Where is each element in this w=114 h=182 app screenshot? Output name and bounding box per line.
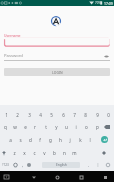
button[interactable]: 4 (35, 109, 45, 120)
button[interactable]: i (71, 121, 81, 132)
button[interactable]: w (10, 121, 20, 132)
button[interactable]: 1 (1, 109, 11, 120)
button[interactable]: , (18, 159, 27, 170)
button[interactable]: 0 (103, 109, 113, 120)
button[interactable]: 8 (80, 109, 90, 120)
button[interactable]: 9 (92, 109, 102, 120)
staticText: a (9, 137, 12, 143)
staticText: ?123 (2, 163, 9, 167)
staticText: 6 (62, 112, 65, 118)
staticText: q (4, 124, 7, 130)
staticText: 4 (39, 112, 42, 118)
staticText: English (56, 163, 67, 167)
button[interactable]: n (59, 147, 69, 158)
staticText: w (13, 124, 17, 130)
button[interactable]: Recents (76, 172, 87, 182)
button[interactable]: 5 (46, 109, 56, 120)
staticText: m (72, 150, 77, 156)
button[interactable]: Backspace (102, 122, 112, 132)
staticText: g (49, 137, 52, 143)
button[interactable]: z (9, 147, 19, 158)
button[interactable]: e (20, 121, 30, 132)
staticText: p (96, 124, 99, 130)
button[interactable]: Emoji (99, 148, 109, 158)
staticText: b (53, 150, 56, 156)
staticText: 70% (95, 1, 101, 5)
staticText: 2 (16, 112, 19, 118)
button[interactable]: r (30, 121, 40, 132)
staticText: u (65, 124, 68, 130)
staticText: Password (4, 53, 23, 59)
button[interactable]: c (29, 147, 39, 158)
button[interactable]: u (61, 121, 71, 132)
button[interactable]: o (81, 121, 91, 132)
button[interactable]: 6 (58, 109, 68, 120)
button[interactable]: Back (28, 172, 39, 182)
staticText: d (29, 137, 32, 143)
button[interactable]: l (85, 134, 95, 145)
button[interactable]: Home (52, 172, 63, 182)
staticText: Username (4, 33, 21, 38)
button[interactable]: ?123 (0, 159, 11, 170)
button[interactable]: t (41, 121, 51, 132)
staticText: j (69, 137, 71, 143)
button[interactable]: Emoji (24, 159, 33, 170)
button[interactable]: j (65, 134, 75, 145)
staticText: i (75, 124, 77, 130)
staticText: 7 (73, 112, 76, 118)
button[interactable]: Shift (0, 148, 9, 158)
staticText: LOGIN (52, 70, 63, 75)
staticText: l (89, 137, 91, 143)
button[interactable]: 2 (12, 109, 22, 120)
staticText: h (59, 137, 62, 143)
staticText: 17:09 (104, 1, 113, 6)
button[interactable]: . (84, 159, 93, 170)
button[interactable]: | (93, 159, 102, 170)
button[interactable]: Switch keyboard (100, 172, 111, 182)
staticText: z (13, 150, 16, 156)
button[interactable]: b (49, 147, 59, 158)
button[interactable]: Show password (103, 53, 110, 60)
button[interactable]: x (19, 147, 29, 158)
staticText: 0 (107, 112, 110, 118)
button[interactable]: LOGIN (4, 68, 110, 76)
button[interactable]: s (15, 134, 25, 145)
button[interactable]: 3 (24, 109, 34, 120)
button[interactable]: g (45, 134, 55, 145)
button[interactable]: a (5, 134, 15, 145)
staticText: , (22, 162, 24, 168)
button[interactable]: q (0, 121, 10, 132)
button[interactable]: d (25, 134, 35, 145)
button[interactable]: h (55, 134, 65, 145)
staticText: 9 (96, 112, 99, 118)
button[interactable]: p (92, 121, 102, 132)
staticText: c (33, 150, 36, 156)
staticText: v (43, 150, 46, 156)
button[interactable]: Username (4, 34, 110, 47)
button[interactable]: y (51, 121, 61, 132)
staticText: 3 (28, 112, 31, 118)
staticText: f (39, 137, 41, 143)
staticText: e (24, 124, 27, 130)
staticText: . (88, 162, 90, 168)
staticText: s (19, 137, 22, 143)
button[interactable]: m (69, 147, 79, 158)
button[interactable]: Enter (99, 134, 110, 145)
staticText: 1 (5, 112, 8, 118)
button[interactable]: Password (4, 52, 110, 60)
staticText: k (79, 137, 82, 143)
button[interactable]: k (75, 134, 85, 145)
staticText: 8 (84, 112, 87, 118)
button[interactable]: Hide keyboard (1, 172, 11, 182)
button[interactable]: Language (8, 159, 22, 170)
button[interactable]: 7 (69, 109, 79, 120)
button[interactable]: v (39, 147, 49, 158)
staticText: | (97, 162, 99, 167)
staticText: x (23, 150, 26, 156)
button[interactable]: Voice input (103, 159, 113, 170)
staticText: o (85, 124, 88, 130)
staticText: y (55, 124, 58, 130)
staticText: t (45, 124, 47, 130)
button[interactable]: f (35, 134, 45, 145)
button[interactable]: English (42, 162, 80, 168)
